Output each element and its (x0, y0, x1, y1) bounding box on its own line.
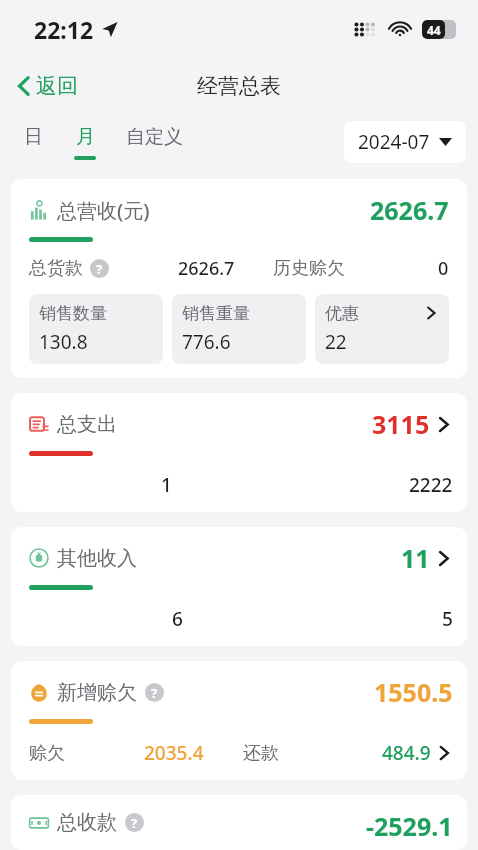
staticText: 1 (161, 472, 172, 498)
staticText: 5 (442, 606, 453, 632)
staticText: 销售重量 (182, 303, 250, 324)
staticText: 总支出 (57, 412, 117, 437)
button[interactable]: 月 (66, 121, 104, 164)
button[interactable]: 日 (14, 121, 52, 164)
staticText: 130.8 (39, 329, 88, 355)
button[interactable]: 销售数量 (29, 294, 163, 364)
staticText: 44 (427, 22, 441, 38)
other: 总收款 (29, 813, 49, 833)
staticText: 6 (172, 606, 183, 632)
button[interactable]: 总收款 (11, 795, 467, 850)
other: 总营收 (29, 200, 49, 220)
staticText: 自定义 (126, 125, 183, 149)
button[interactable]: 优惠 (315, 294, 449, 364)
staticText: 其他收入 (57, 546, 137, 571)
staticText: 赊欠 (29, 742, 65, 765)
staticText: 经营总表 (197, 73, 281, 99)
other: 总支出 (29, 414, 49, 434)
staticText: 3115 (372, 407, 430, 441)
other: 其他收入 (29, 548, 49, 568)
staticText: 2626.7 (178, 256, 235, 281)
staticText: 22:12 (34, 14, 94, 45)
button[interactable]: 返回 (0, 67, 90, 105)
button[interactable]: 总支出 (11, 393, 467, 512)
button[interactable]: 新增赊欠 (11, 661, 467, 780)
button[interactable]: 自定义 (118, 121, 191, 164)
staticText: 总营收(元) (57, 197, 150, 224)
staticText: 总收款 (57, 810, 117, 835)
staticText: 11 (401, 541, 430, 575)
staticText: 2024-07 (358, 129, 430, 155)
button[interactable]: 说明 (90, 259, 109, 278)
button[interactable]: 总营收 (11, 179, 467, 378)
staticText: 返回 (36, 73, 78, 99)
button[interactable]: 2024-07 (344, 121, 466, 163)
other: 新增赊欠 (29, 682, 49, 702)
staticText: 22 (325, 329, 347, 355)
staticText: 月 (76, 125, 95, 149)
button[interactable]: 销售重量 (172, 294, 306, 364)
staticText: ? (131, 814, 138, 832)
staticText: 还款 (243, 742, 279, 765)
staticText: 0 (438, 256, 449, 281)
staticText: 日 (24, 125, 43, 149)
staticText: 1550.5 (374, 675, 453, 709)
staticText: 2626.7 (370, 193, 449, 227)
button[interactable]: 说明 (145, 683, 164, 702)
staticText: 484.9 (382, 740, 431, 766)
staticText: 历史赊欠 (273, 257, 345, 280)
staticText: 2035.4 (144, 740, 204, 766)
staticText: 2222 (409, 472, 453, 498)
button[interactable]: 说明 (125, 813, 144, 832)
staticText: 优惠 (325, 303, 359, 324)
staticText: ? (96, 260, 103, 278)
staticText: ? (151, 684, 158, 702)
staticText: 总货款 (29, 257, 83, 280)
staticText: 776.6 (182, 329, 231, 355)
staticText: -2529.1 (366, 809, 453, 836)
staticText: 新增赊欠 (57, 680, 137, 705)
staticText: 销售数量 (39, 303, 107, 324)
button[interactable]: 其他收入 (11, 527, 467, 646)
